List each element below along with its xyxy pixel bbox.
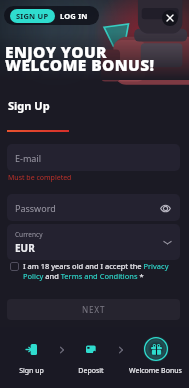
- button[interactable]: Close: [162, 10, 178, 26]
- staticText: Deposit: [78, 366, 104, 376]
- button[interactable]: Currency: [7, 224, 180, 260]
- staticText: Must be completed: [8, 173, 72, 183]
- staticText: Password: [15, 202, 56, 214]
- button[interactable]: Password: [7, 194, 180, 221]
- button[interactable]: Deposit: [61, 327, 121, 388]
- staticText: ENJOY YOUR: [5, 41, 107, 62]
- staticText: Currency: [15, 230, 43, 239]
- button[interactable]: Welcome Bonus: [125, 327, 185, 388]
- button[interactable]: SIGN UP: [10, 9, 55, 23]
- button[interactable]: I am 18 years old and I accept the Priva…: [7, 261, 180, 281]
- staticText: NEXT: [82, 304, 106, 315]
- button[interactable]: Show password: [158, 201, 172, 215]
- staticText: Welcome Bonus: [129, 366, 182, 376]
- button[interactable]: E-mail: [7, 144, 180, 171]
- staticText: SIGN UP: [16, 11, 49, 21]
- staticText: WELCOME BONUS!: [5, 54, 155, 75]
- button[interactable]: LOG IN: [55, 9, 93, 23]
- staticText: Sign Up: [8, 98, 50, 113]
- staticText: E-mail: [15, 152, 42, 164]
- staticText: I am 18 years old and I accept the Priva…: [23, 261, 180, 281]
- staticText: EUR: [15, 241, 35, 255]
- staticText: LOG IN: [60, 11, 88, 21]
- staticText: Sign up: [19, 366, 44, 376]
- button[interactable]: Sign up: [1, 327, 61, 388]
- button[interactable]: NEXT: [7, 299, 180, 320]
- other: Select currency: [163, 238, 172, 247]
